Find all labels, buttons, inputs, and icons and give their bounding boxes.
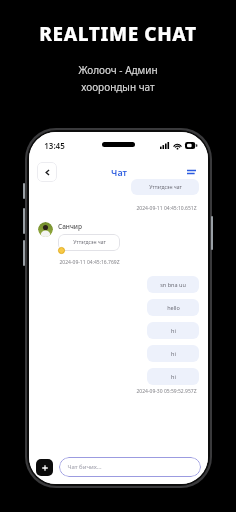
staticText: Чат bbox=[111, 166, 127, 178]
staticText: hi bbox=[171, 373, 176, 380]
button[interactable]: Menu bbox=[183, 164, 199, 180]
staticText: 13:45 bbox=[44, 140, 65, 151]
staticText: Уттэгдсэн чат bbox=[73, 239, 106, 246]
button[interactable]: Add attachment bbox=[36, 459, 53, 476]
button[interactable]: hi bbox=[147, 322, 199, 339]
staticText: hello bbox=[167, 304, 180, 311]
staticText: Уттэгдсэн чат bbox=[149, 184, 182, 191]
button[interactable]: Чат бичих... bbox=[59, 457, 201, 477]
staticText: 2024-09-11 04:45:10.651Z bbox=[136, 205, 197, 212]
staticText: хоорондын чат bbox=[81, 80, 155, 94]
button[interactable]: Back bbox=[37, 162, 57, 182]
staticText: 2024-09-30 05:59:52.957Z bbox=[136, 388, 197, 395]
button[interactable]: hi bbox=[147, 368, 199, 385]
button[interactable]: sn bna uu bbox=[147, 276, 199, 293]
staticText: Чат бичих... bbox=[67, 463, 102, 471]
staticText: Жолооч - Админ bbox=[78, 63, 158, 77]
staticText: hi bbox=[171, 350, 176, 357]
staticText: sn bna uu bbox=[160, 281, 186, 288]
button[interactable]: Уттэгдсэн чат bbox=[131, 179, 199, 195]
staticText: REALTIME CHAT bbox=[39, 21, 197, 47]
button[interactable]: Уттэгдсэн чат bbox=[58, 234, 120, 251]
button[interactable]: hello bbox=[147, 299, 199, 316]
staticText: hi bbox=[171, 327, 176, 334]
staticText: 2024-09-11 04:45:16.769Z bbox=[59, 259, 120, 266]
button[interactable]: hi bbox=[147, 345, 199, 362]
staticText: Санчир bbox=[58, 222, 82, 231]
